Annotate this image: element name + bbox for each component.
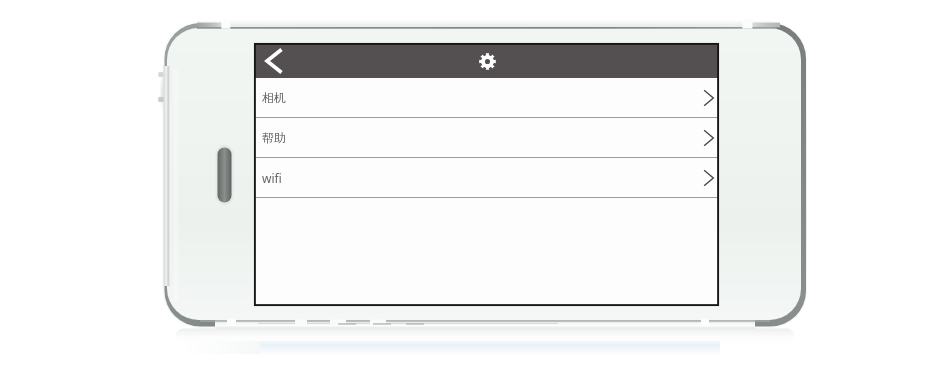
staticText: 相机 — [262, 90, 286, 105]
button[interactable]: Settings — [472, 46, 502, 76]
button[interactable]: 相机 — [254, 78, 719, 117]
staticText: wifi — [262, 170, 282, 186]
staticText: 帮助 — [262, 130, 286, 145]
button[interactable]: 帮助 — [254, 118, 719, 157]
button[interactable]: Back — [259, 43, 289, 78]
button[interactable]: wifi — [254, 158, 719, 197]
